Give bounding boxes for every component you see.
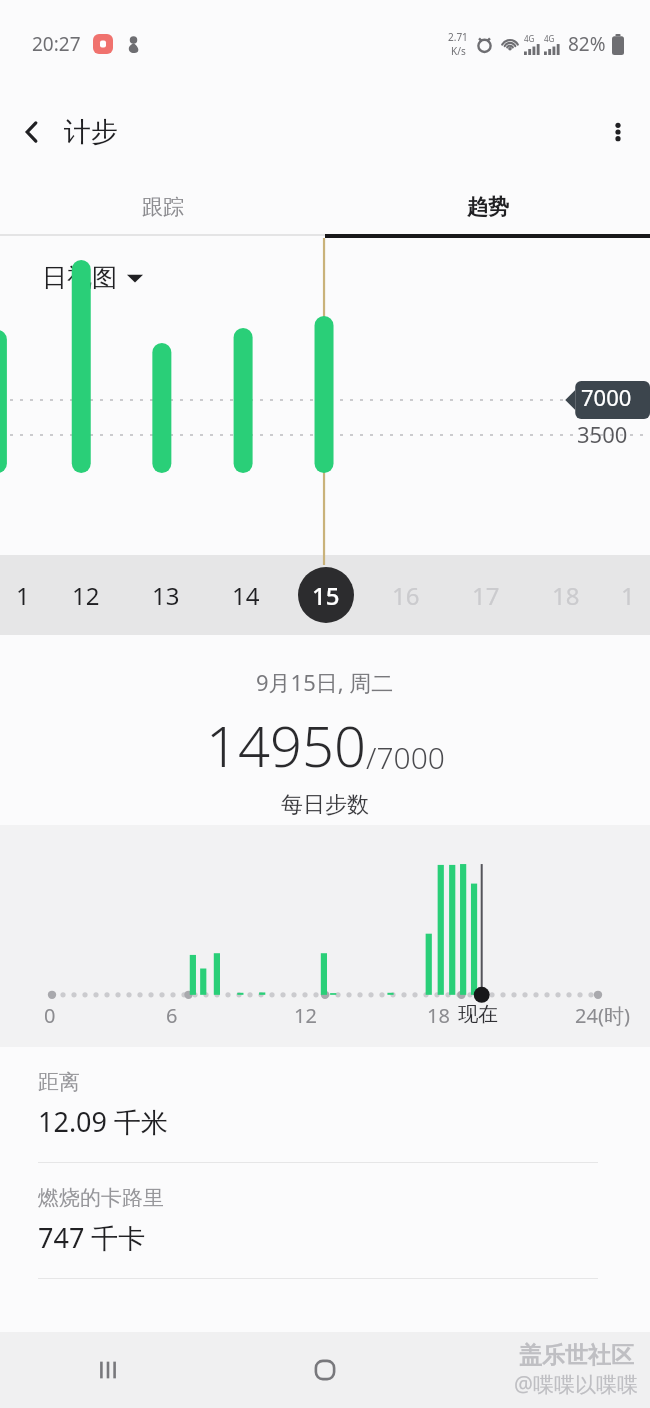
staticText: /7000 <box>366 737 445 778</box>
staticText: 82% <box>568 31 606 57</box>
staticText: 距离 <box>38 1069 80 1095</box>
button[interactable]: 12 <box>45 555 126 635</box>
staticText: 17 <box>472 579 500 612</box>
staticText: 18 <box>552 579 580 612</box>
staticText: 14950 <box>206 707 366 783</box>
staticText: 12.09 千米 <box>38 1103 169 1140</box>
staticText: 现在 <box>458 1002 498 1027</box>
staticText: 日视图 <box>42 262 117 293</box>
staticText: 16 <box>392 579 420 612</box>
button[interactable]: 17 <box>446 555 526 635</box>
staticText: 0 <box>44 1002 56 1029</box>
staticText: 4G <box>544 33 555 44</box>
staticText: 7000 <box>581 382 632 412</box>
button[interactable]: 14 <box>206 555 286 635</box>
button[interactable]: Back <box>0 100 64 164</box>
staticText: 跟踪 <box>142 194 184 220</box>
button[interactable]: 跟踪 <box>0 176 325 238</box>
staticText: 趋势 <box>467 194 509 220</box>
button[interactable]: 趋势 <box>325 176 650 238</box>
staticText: 1 <box>16 579 30 612</box>
staticText: 14 <box>232 579 260 612</box>
staticText: 747 千卡 <box>38 1219 146 1256</box>
staticText: 2.71 <box>448 30 468 44</box>
staticText: 24(时) <box>575 1002 630 1029</box>
staticText: 燃烧的卡路里 <box>38 1185 164 1211</box>
staticText: 1 <box>621 579 635 612</box>
staticText: @喋喋以喋喋 <box>514 1370 638 1399</box>
button[interactable]: Recents <box>0 1332 216 1408</box>
staticText: 盖乐世社区 <box>519 1341 634 1370</box>
button[interactable]: 15 <box>286 555 366 635</box>
staticText: 12 <box>294 1002 317 1029</box>
staticText: K/s <box>451 44 466 58</box>
staticText: 15 <box>312 579 340 612</box>
staticText: 20:27 <box>32 31 81 57</box>
staticText: 每日步数 <box>281 791 369 819</box>
staticText: 6 <box>166 1002 178 1029</box>
staticText: 3500 <box>577 419 628 449</box>
button[interactable]: 燃烧的卡路里 <box>0 1163 650 1279</box>
button[interactable]: 13 <box>126 555 206 635</box>
button[interactable]: More options <box>586 100 650 164</box>
staticText: 18 <box>427 1002 450 1029</box>
button[interactable]: Home <box>216 1332 433 1408</box>
staticText: 9月15日, 周二 <box>256 667 394 697</box>
button[interactable]: 16 <box>366 555 446 635</box>
button[interactable]: Back <box>433 1332 650 1408</box>
staticText: 12 <box>72 579 100 612</box>
button[interactable]: 距离 <box>0 1047 650 1163</box>
staticText: 4G <box>524 33 535 44</box>
button[interactable]: 18 <box>526 555 606 635</box>
button[interactable]: 1 <box>0 555 45 635</box>
staticText: 13 <box>152 579 180 612</box>
button[interactable]: 日视图 <box>42 262 143 293</box>
staticText: 计步 <box>64 115 118 149</box>
